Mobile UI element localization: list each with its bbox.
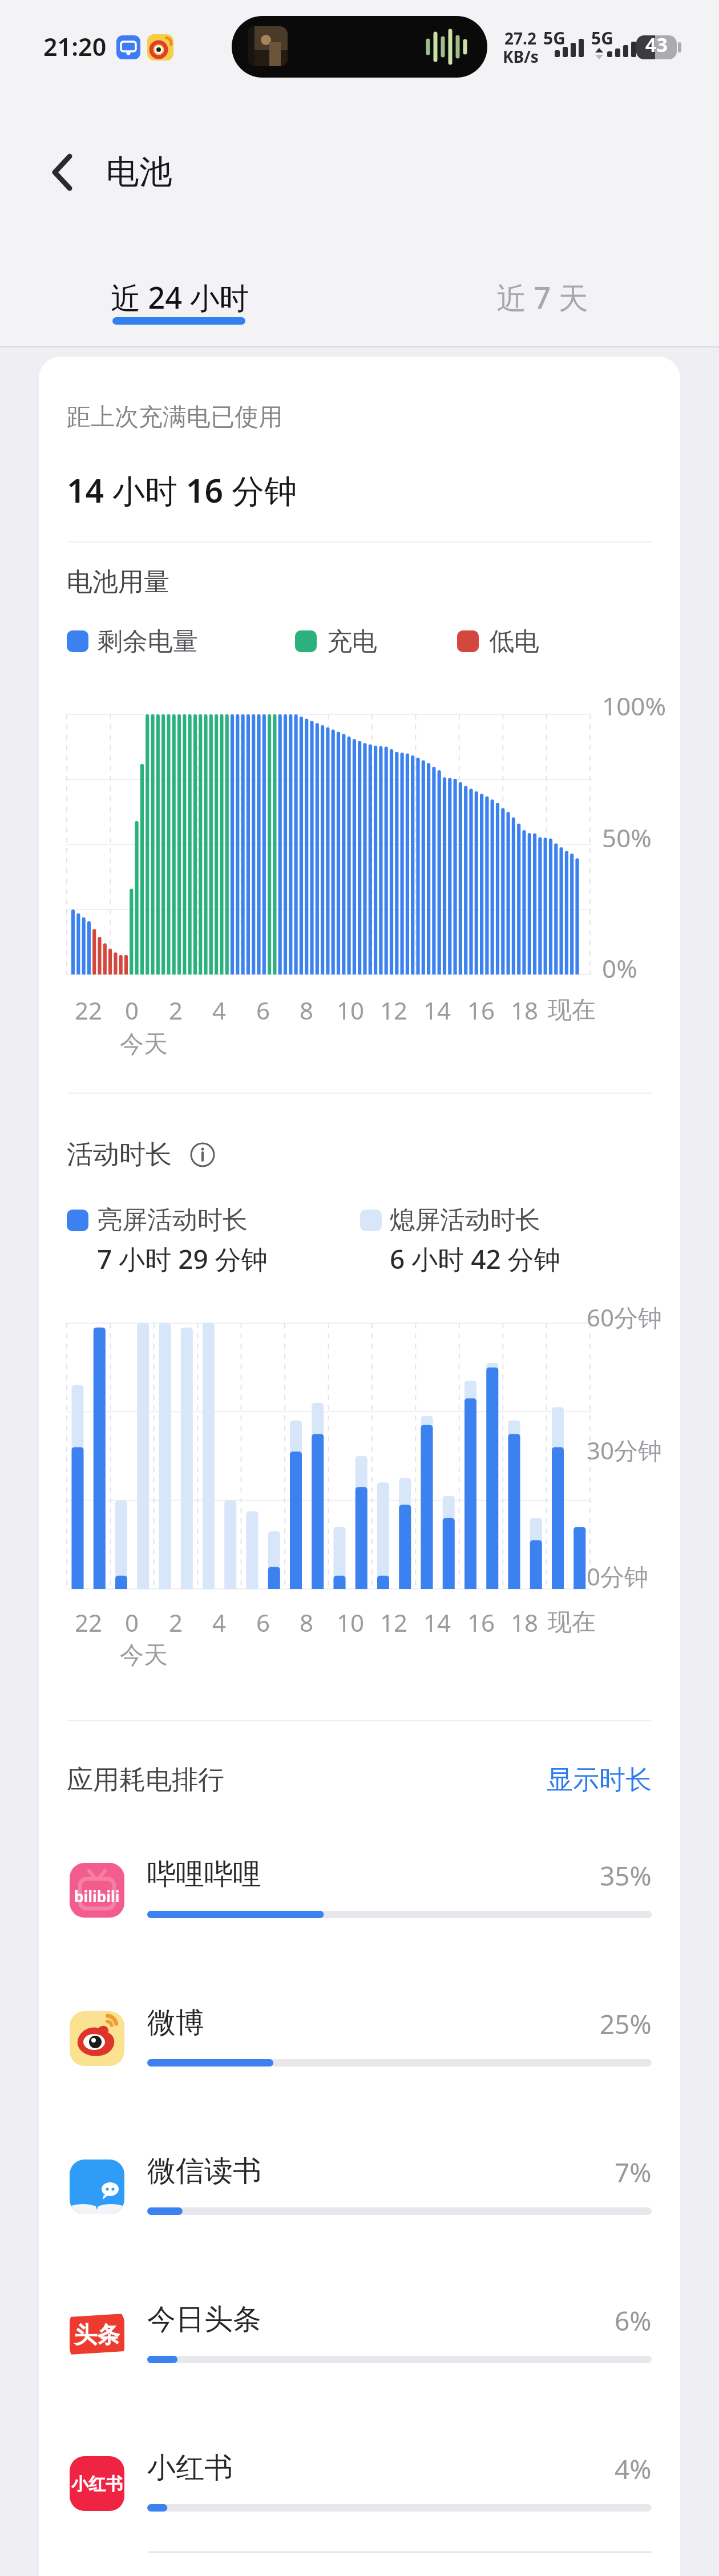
staticText: 应用耗电排行 <box>67 1764 224 1797</box>
staticText: 活动时长 <box>67 1138 172 1171</box>
staticText: 60分钟 <box>587 1301 663 1333</box>
staticText: 6 小时 42 分钟 <box>390 1241 560 1277</box>
staticText: 小红书 <box>71 2473 123 2495</box>
staticText: 4 <box>212 994 227 1026</box>
staticText: 低电 <box>489 626 539 657</box>
staticText: 0分钟 <box>587 1560 649 1592</box>
staticText: 21:20 <box>43 30 107 63</box>
button[interactable] <box>451 268 633 337</box>
staticText: 4% <box>615 2451 652 2487</box>
staticText: KB/s <box>503 46 539 67</box>
staticText: 5G <box>543 26 565 50</box>
button[interactable]: 显示时长 <box>524 1760 652 1800</box>
staticText: 18 <box>511 1606 539 1639</box>
staticText: 近 24 小时 <box>111 277 249 317</box>
staticText: 微博 <box>147 2005 204 2041</box>
staticText: 亮屏活动时长 <box>97 1204 248 1236</box>
staticText: 今日头条 <box>147 2302 261 2338</box>
staticText: 35% <box>600 1858 652 1894</box>
staticText: 头条 <box>74 2320 120 2349</box>
staticText: 熄屏活动时长 <box>390 1204 540 1236</box>
staticText: 7% <box>615 2154 652 2190</box>
staticText: 2 <box>169 994 183 1026</box>
staticText: 6% <box>615 2303 652 2339</box>
staticText: 2 <box>169 1606 183 1639</box>
staticText: 4 <box>212 1606 227 1639</box>
button[interactable] <box>86 268 274 337</box>
staticText: 0 <box>125 994 139 1026</box>
staticText: 50% <box>602 820 652 855</box>
staticText: 微信读书 <box>147 2153 261 2189</box>
staticText: 距上次充满电已使用 <box>67 402 282 432</box>
staticText: 12 <box>380 1606 408 1639</box>
button[interactable] <box>50 154 75 191</box>
staticText: 0% <box>602 951 637 985</box>
staticText: 6 <box>256 1606 270 1639</box>
staticText: 现在 <box>548 1607 596 1637</box>
staticText: 100% <box>602 689 667 723</box>
staticText: 30分钟 <box>587 1434 663 1466</box>
staticText: 现在 <box>548 995 596 1025</box>
staticText: 电池用量 <box>67 566 169 598</box>
staticText: bilibili <box>74 1886 120 1906</box>
staticText: 25% <box>600 2006 652 2042</box>
staticText: 14 <box>423 1606 451 1639</box>
staticText: 27.2 <box>504 27 536 49</box>
staticText: 14 <box>423 994 451 1026</box>
button[interactable] <box>62 1834 657 1957</box>
button[interactable] <box>62 2279 657 2402</box>
staticText: 小红书 <box>147 2450 233 2486</box>
staticText: 16 <box>467 994 495 1026</box>
staticText: 6 <box>256 994 270 1026</box>
staticText: 显示时长 <box>547 1764 652 1797</box>
staticText: 哔哩哔哩 <box>147 1857 261 1892</box>
staticText: 43 <box>645 35 668 55</box>
staticText: 充电 <box>327 626 377 657</box>
staticText: 剩余电量 <box>98 626 198 657</box>
staticText: 18 <box>511 994 539 1026</box>
staticText: 今天 <box>120 1640 168 1671</box>
staticText: 电池 <box>106 151 172 193</box>
staticText: 7 小时 29 分钟 <box>97 1241 268 1277</box>
button[interactable] <box>62 2428 657 2550</box>
staticText: 近 7 天 <box>496 277 588 317</box>
staticText: 0 <box>125 1606 139 1639</box>
staticText: 10 <box>337 1606 365 1639</box>
button[interactable] <box>62 2131 657 2254</box>
button[interactable] <box>62 1983 657 2105</box>
staticText: 5G <box>591 26 613 50</box>
staticText: 8 <box>300 994 314 1026</box>
staticText: 今天 <box>120 1029 168 1059</box>
staticText: 10 <box>337 994 365 1026</box>
staticText: 12 <box>380 994 408 1026</box>
staticText: 14 小时 16 分钟 <box>67 468 297 512</box>
staticText: 16 <box>467 1606 495 1639</box>
staticText: 22 <box>75 994 103 1026</box>
staticText: 22 <box>75 1606 103 1639</box>
staticText: 8 <box>300 1606 314 1639</box>
